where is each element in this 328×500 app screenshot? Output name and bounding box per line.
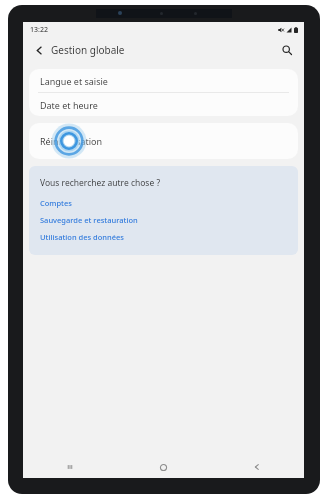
staticText: 13:22 [30,25,48,35]
button[interactable]: Sauvegarde et restauration [40,215,138,225]
staticText: Utilisation des données [40,232,124,242]
staticText: Sauvegarde et restauration [40,215,138,225]
button[interactable]: Réinitialisation [29,123,298,159]
button[interactable]: Retour [210,456,304,478]
staticText: Réinitialisation [40,135,103,147]
staticText: Comptes [40,198,72,208]
button[interactable]: Retour [31,42,47,58]
staticText: Date et heure [40,99,98,111]
button[interactable]: Date et heure [29,93,298,116]
staticText: Langue et saisie [40,75,108,87]
button[interactable]: Rechercher [278,41,296,59]
button[interactable]: Utilisation des données [40,232,124,242]
button[interactable]: Langue et saisie [29,69,298,92]
staticText: Vous recherchez autre chose ? [40,177,161,189]
button[interactable]: Applications récentes [23,456,116,478]
staticText: Gestion globale [51,43,125,57]
button[interactable]: Comptes [40,198,72,208]
button[interactable]: Accueil [116,456,210,478]
